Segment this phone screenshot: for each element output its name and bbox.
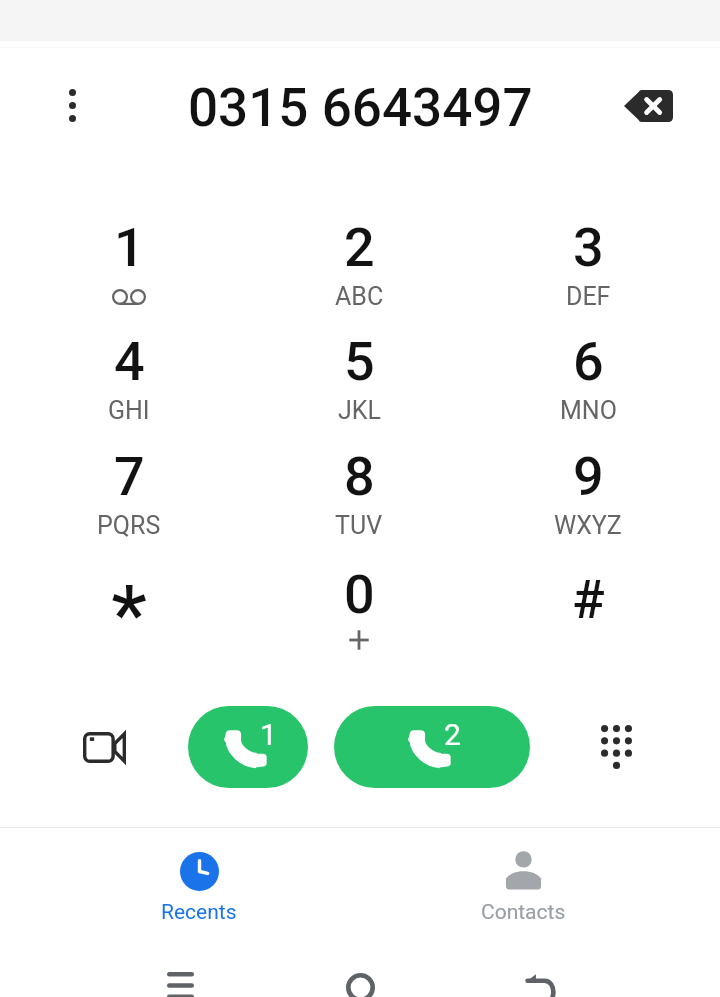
staticText: * [111, 568, 147, 662]
staticText: 3 [573, 216, 604, 279]
staticText: Recents [161, 900, 237, 925]
staticText: 1 [114, 216, 145, 279]
button[interactable]: Home [330, 957, 390, 997]
button[interactable]: Call with SIM 1 [188, 706, 308, 788]
staticText: 8 [344, 445, 375, 508]
button[interactable]: 9 [493, 437, 683, 549]
staticText: 2 [344, 216, 375, 279]
button[interactable]: * [34, 555, 224, 667]
staticText: JKL [338, 396, 381, 425]
button[interactable]: 7 [34, 437, 224, 549]
button[interactable]: 6 [493, 322, 683, 434]
button[interactable]: Contacts [433, 840, 613, 928]
staticText: MNO [560, 396, 617, 425]
button[interactable]: Recent apps [150, 955, 210, 997]
staticText: 0315 6643497 [188, 77, 533, 139]
staticText: 6 [573, 330, 604, 393]
staticText: 9 [573, 445, 604, 508]
button[interactable]: 3 [493, 208, 683, 320]
button[interactable]: 8 [264, 437, 454, 549]
staticText: GHI [108, 396, 150, 425]
button[interactable]: Dialpad [582, 713, 650, 781]
staticText: 7 [114, 445, 145, 508]
staticText: DEF [566, 282, 611, 311]
button[interactable]: Backspace [624, 74, 673, 138]
staticText: 1 [260, 717, 277, 752]
staticText: 4 [114, 330, 145, 393]
button[interactable]: 0 [264, 555, 454, 667]
button[interactable]: Call with SIM 2 [334, 706, 530, 788]
button[interactable]: Back [511, 958, 571, 997]
button[interactable]: 1 [34, 208, 224, 320]
staticText: 5 [344, 330, 375, 393]
button[interactable]: Recents [109, 840, 289, 928]
button[interactable]: 4 [34, 322, 224, 434]
staticText: ABC [335, 282, 384, 311]
staticText: 2 [444, 717, 461, 752]
staticText: TUV [335, 511, 383, 540]
staticText: Contacts [481, 900, 566, 925]
staticText: PQRS [97, 511, 161, 540]
staticText: 0 [344, 563, 375, 626]
button[interactable]: Video call [70, 713, 138, 781]
staticText: WXYZ [554, 511, 622, 540]
button[interactable]: 2 [264, 208, 454, 320]
button[interactable]: More options [48, 81, 96, 129]
button[interactable]: # [493, 555, 683, 667]
button[interactable]: 5 [264, 322, 454, 434]
staticText: # [572, 568, 605, 631]
